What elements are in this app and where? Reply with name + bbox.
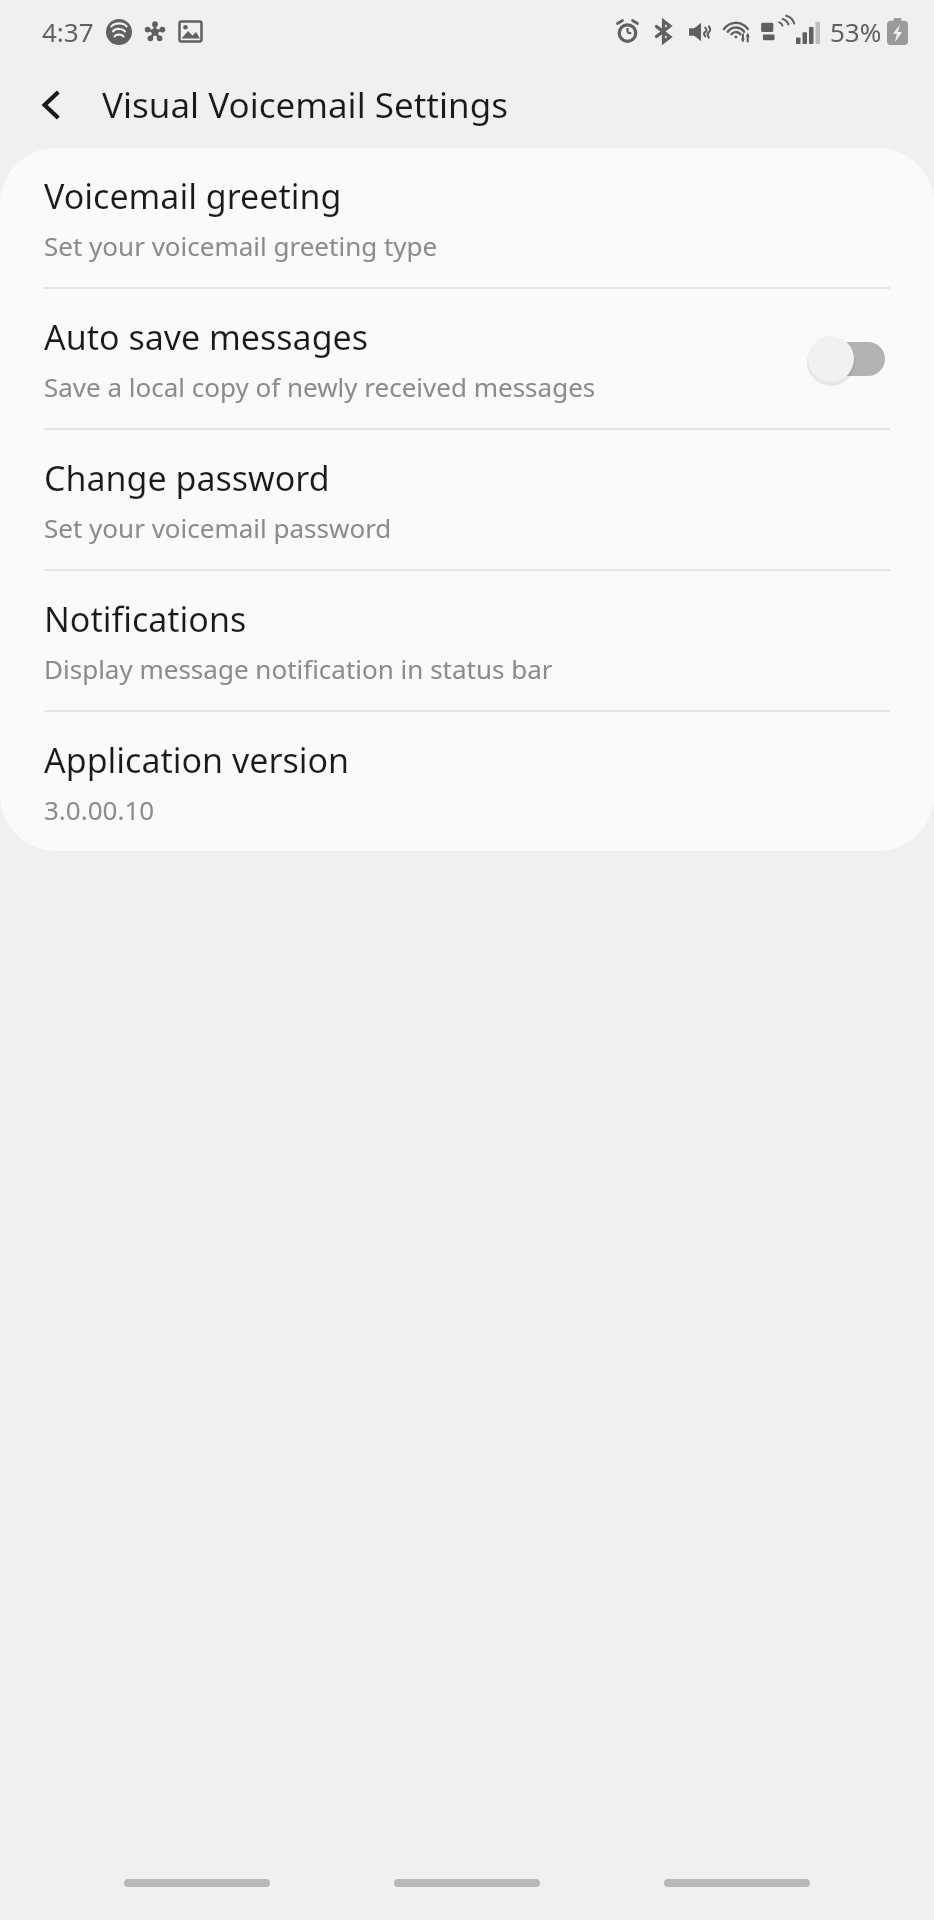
staticText: 3.0.00.10 [44,792,155,827]
button[interactable]: Notifications [0,571,934,710]
button[interactable]: Application version [0,712,934,851]
button[interactable]: Auto save messages toggle [778,309,908,409]
button[interactable]: Navigation [664,1879,810,1887]
staticText: Visual Voicemail Settings [102,81,508,129]
button[interactable]: Auto save messages [0,289,934,428]
staticText: Change password [44,455,330,501]
staticText: Application version [44,737,350,783]
staticText: Voicemail greeting [44,173,342,219]
button[interactable]: Navigation [394,1879,540,1887]
button[interactable]: Voicemail greeting [0,148,934,287]
staticText: 53% [830,14,882,49]
button[interactable]: Navigation [124,1879,270,1887]
button[interactable]: Back [22,76,80,134]
staticText: Auto save messages [44,314,369,360]
staticText: Set your voicemail password [44,510,392,545]
staticText: Set your voicemail greeting type [44,228,438,263]
staticText: Notifications [44,596,247,642]
staticText: Save a local copy of newly received mess… [44,369,596,404]
button[interactable]: Change password [0,430,934,569]
staticText: 4:37 [42,14,94,49]
staticText: Display message notification in status b… [44,651,553,686]
